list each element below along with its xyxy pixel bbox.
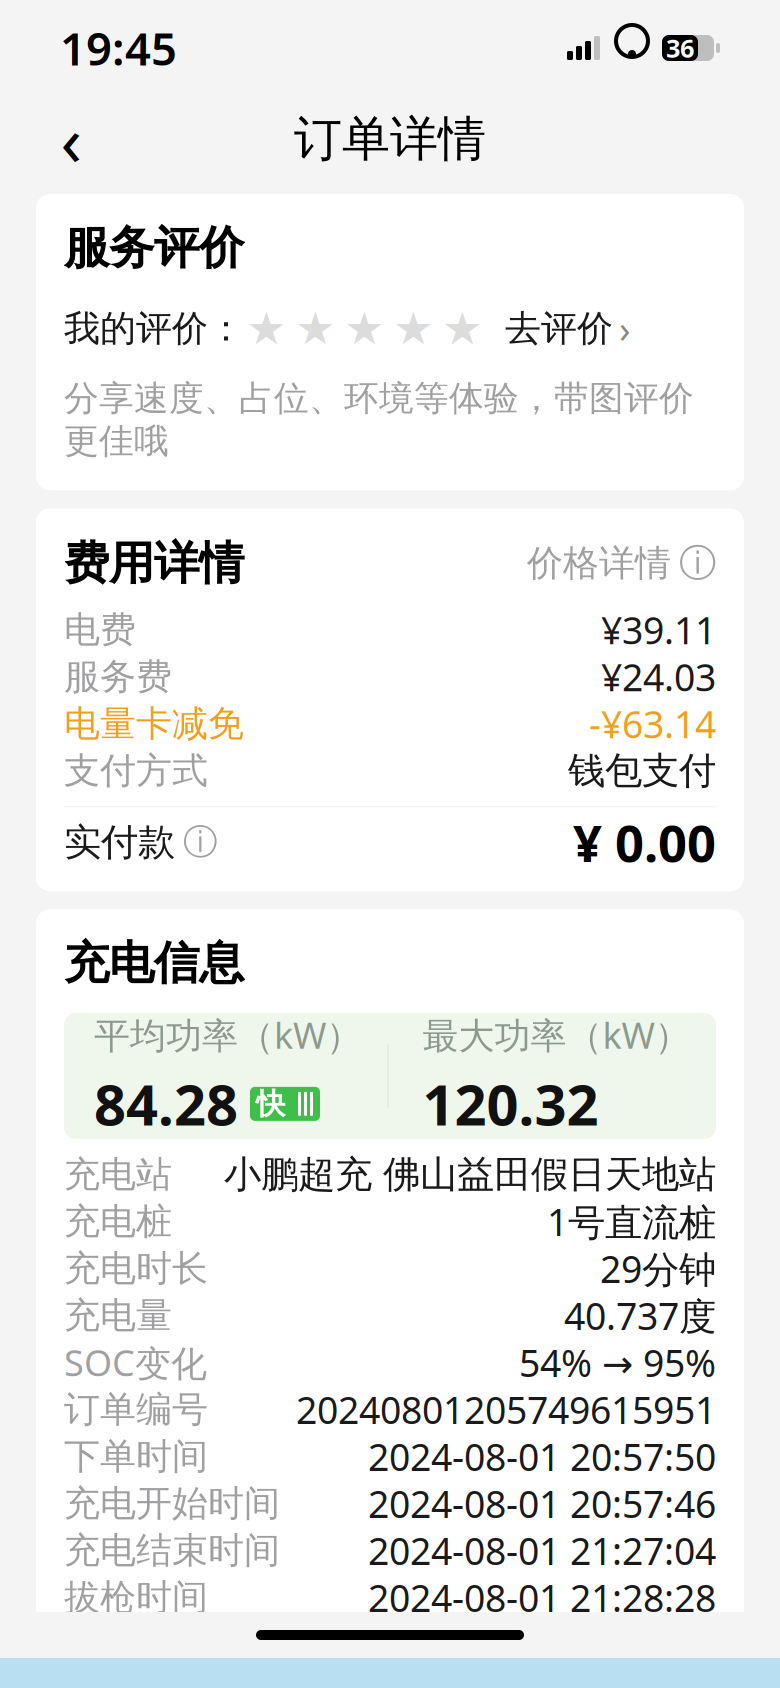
staticText: 快: [256, 1086, 285, 1122]
staticText: 1号直流桩: [547, 1197, 716, 1246]
staticText: 小鹏超充 佛山益田假日天地站: [224, 1151, 716, 1197]
staticText: 订单编号: [64, 1387, 208, 1431]
staticText: ⓘ: [679, 540, 716, 586]
staticText: 84.28: [94, 1067, 238, 1141]
staticText: 充电开始时间: [64, 1481, 280, 1525]
staticText: 2024-08-01 20:57:46: [368, 1479, 716, 1528]
staticText: ★: [246, 303, 287, 354]
staticText: ⓘ: [183, 821, 218, 864]
staticText: 分享速度、占位、环境等体验，带图评价更佳哦: [64, 377, 694, 462]
staticText: ›: [619, 304, 631, 353]
staticText: 平均功率（kW）: [94, 1011, 362, 1059]
staticText: 充电量: [64, 1293, 172, 1337]
staticText: SOC变化: [64, 1338, 207, 1386]
staticText: 停止原因: [64, 1622, 208, 1666]
staticText: 去评价: [505, 306, 613, 351]
staticText: ¥ 0.00: [573, 809, 716, 876]
staticText: 充电信息: [64, 935, 244, 991]
button[interactable]: 价格详情: [527, 534, 716, 592]
staticText: 我的评价：: [64, 306, 244, 351]
staticText: 2024-08-01 20:57:50: [368, 1432, 716, 1481]
staticText: 订单详情: [294, 109, 486, 168]
button[interactable]: Back: [36, 104, 106, 174]
staticText: 钱包支付: [568, 748, 716, 794]
staticText: 2024-08-01 21:28:28: [368, 1573, 716, 1622]
staticText: 20240801205749615951: [296, 1385, 716, 1434]
staticText: ★: [393, 303, 434, 354]
staticText: 实付款: [64, 819, 175, 865]
staticText: ★: [295, 303, 336, 354]
staticText: 54% → 95%: [519, 1338, 716, 1387]
staticText: ¥39.11: [601, 605, 716, 655]
staticText: 服务费: [64, 655, 172, 699]
staticText: 拔枪时间: [64, 1575, 208, 1619]
button[interactable]: 去评价: [483, 298, 631, 359]
staticText: 达到桩 SOC 限定值: [400, 1620, 716, 1669]
staticText: ‹: [60, 93, 81, 185]
staticText: 充电时长: [64, 1246, 208, 1290]
staticText: ¥24.03: [601, 652, 716, 702]
staticText: ★: [442, 303, 483, 354]
staticText: 36: [666, 31, 694, 65]
staticText: 服务评价: [64, 220, 244, 276]
staticText: 29分钟: [600, 1244, 716, 1293]
staticText: 19:45: [60, 18, 177, 78]
staticText: 最大功率（kW）: [422, 1011, 690, 1059]
staticText: 充电结束时间: [64, 1528, 280, 1572]
staticText: 下单时间: [64, 1434, 208, 1478]
staticText: 费用详情: [64, 535, 244, 591]
staticText: 充电桩: [64, 1199, 172, 1243]
staticText: 电费: [64, 608, 136, 652]
staticText: ★: [344, 303, 385, 354]
staticText: 120.32: [422, 1067, 598, 1141]
staticText: 价格详情: [527, 541, 671, 585]
staticText: -¥63.14: [589, 699, 716, 749]
staticText: 充电站: [64, 1152, 172, 1196]
staticText: 40.737度: [564, 1291, 716, 1340]
staticText: 电量卡减免: [64, 702, 244, 746]
staticText: 支付方式: [64, 749, 208, 793]
staticText: 2024-08-01 21:27:04: [368, 1526, 716, 1575]
